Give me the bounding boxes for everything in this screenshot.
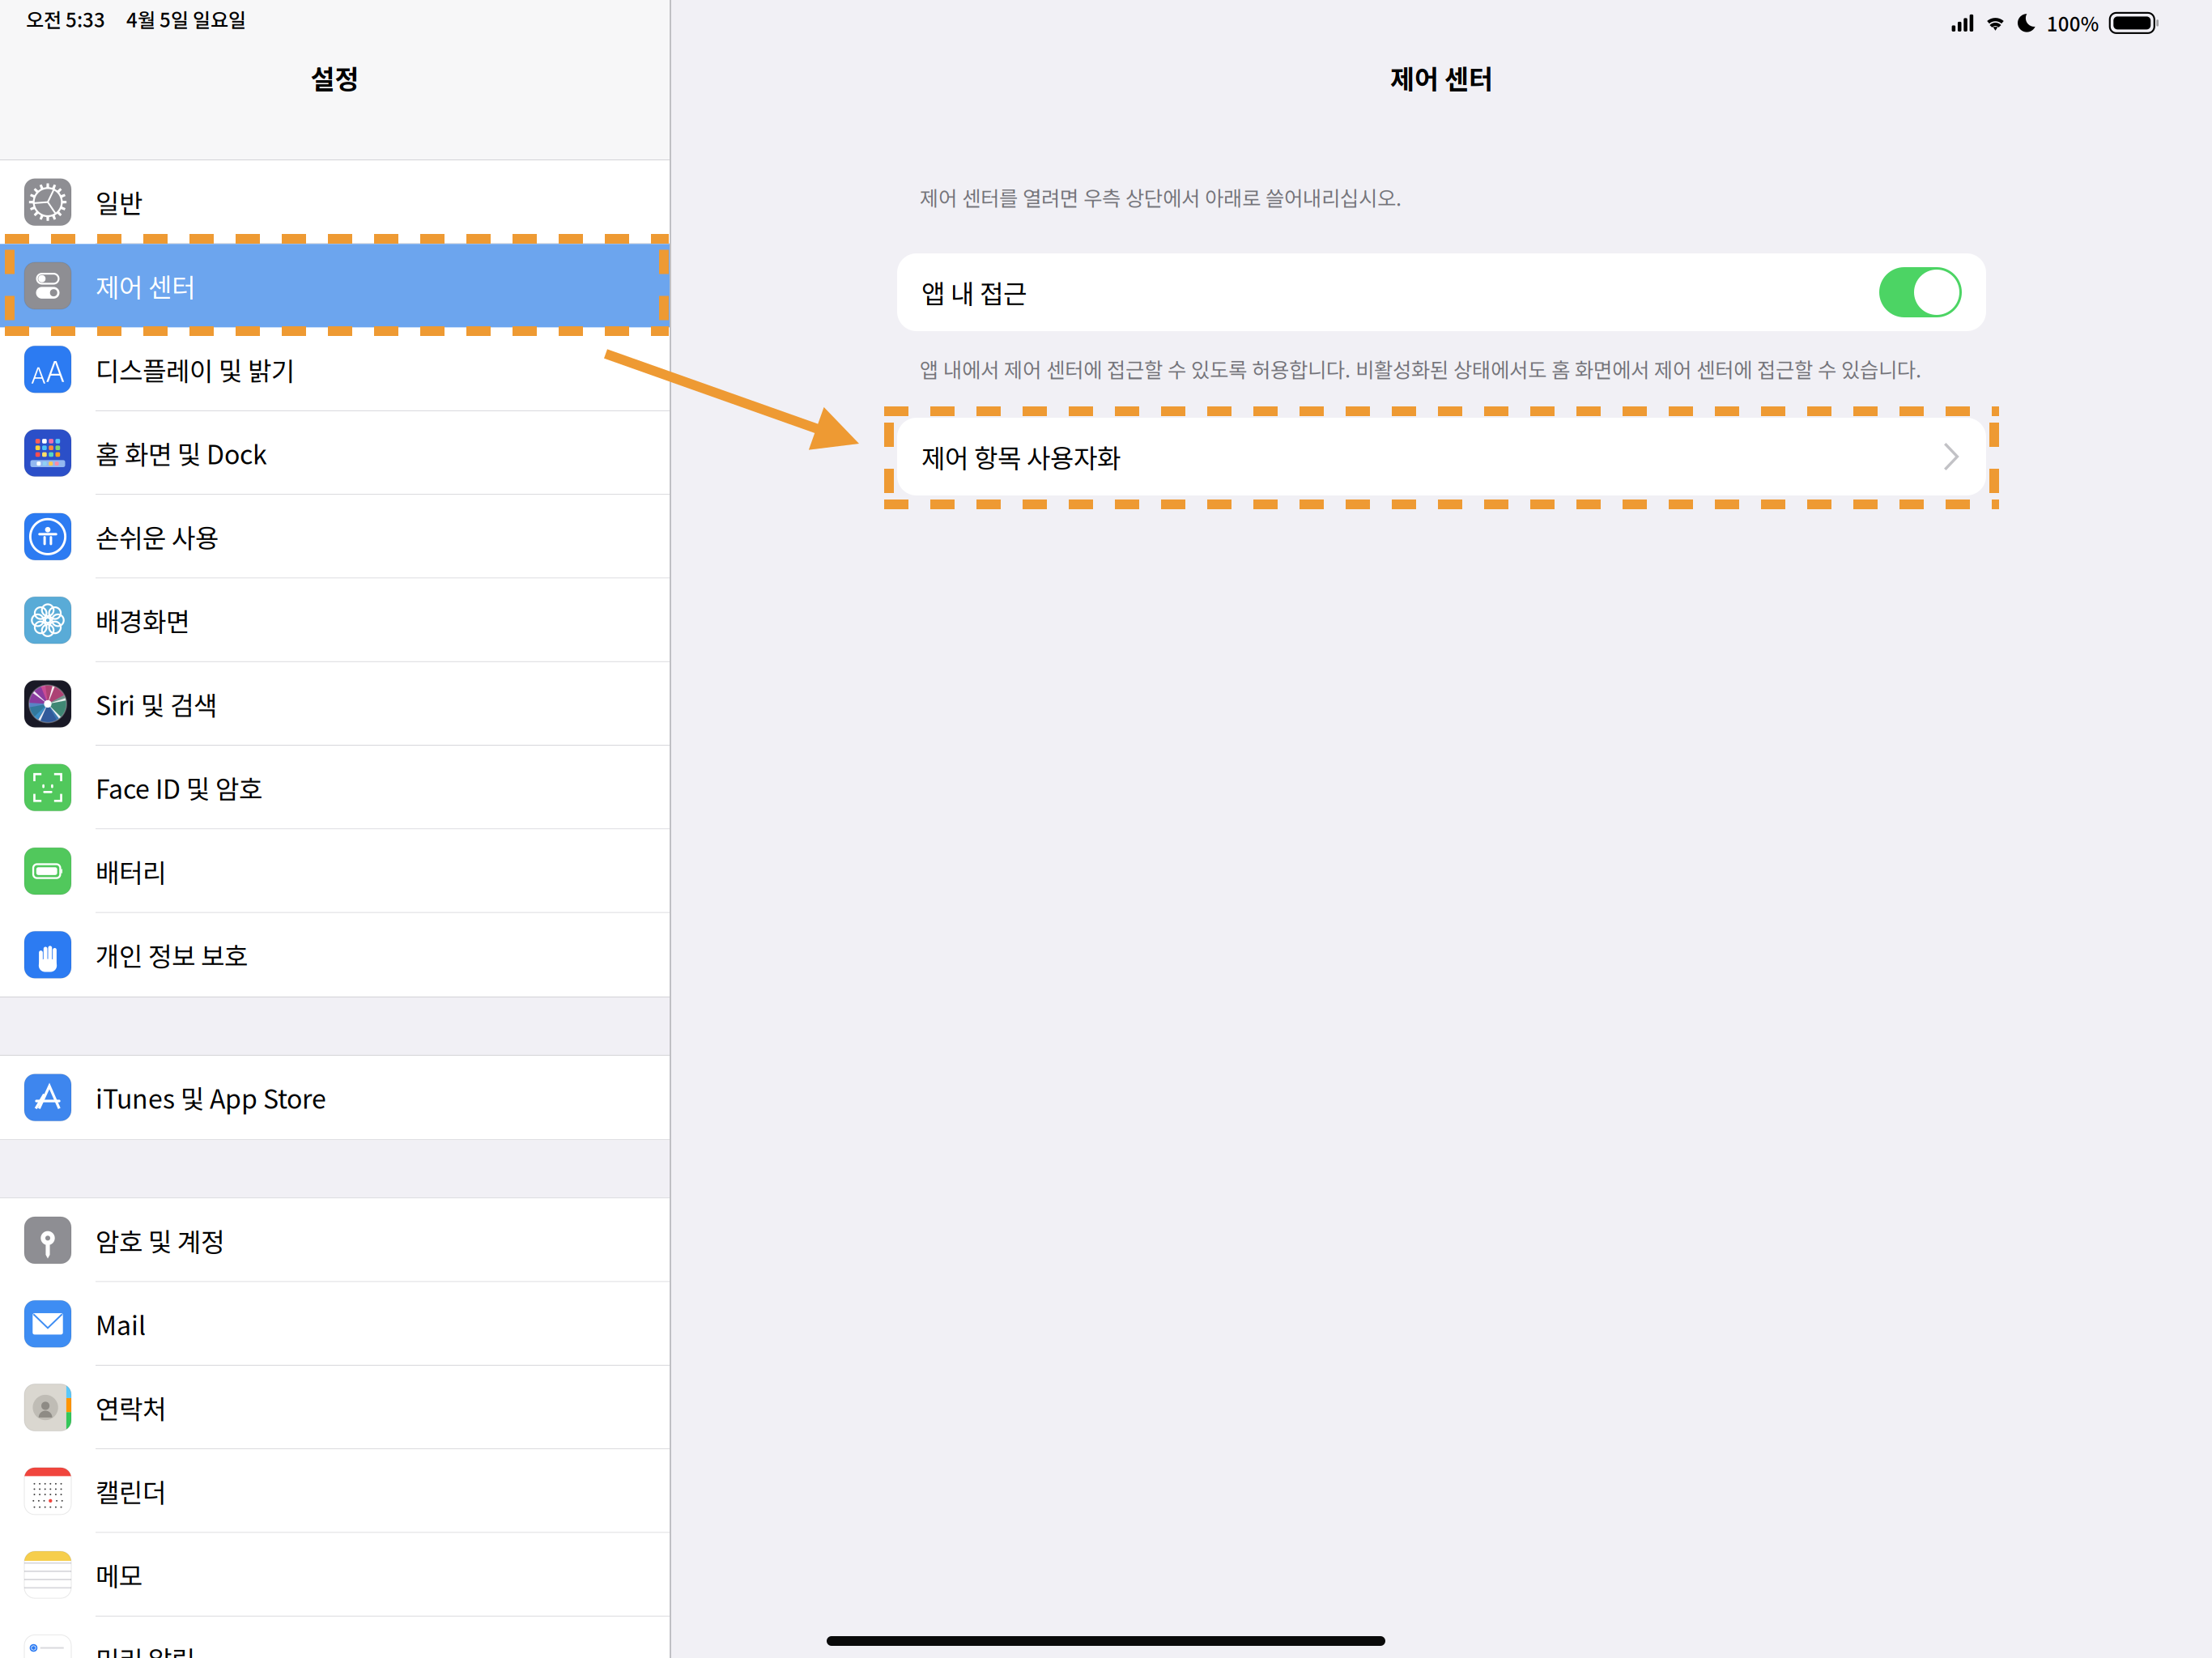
staticText: 홈 화면 및 Dock bbox=[96, 434, 267, 472]
staticText: 제어 센터 bbox=[96, 267, 195, 304]
staticText: 앱 내 접근 bbox=[921, 273, 1027, 311]
button[interactable]: 일반 bbox=[0, 160, 670, 244]
button[interactable]: 배경화면 bbox=[0, 578, 670, 662]
staticText: 메모 bbox=[96, 1556, 143, 1593]
button[interactable]: 배터리 bbox=[0, 829, 670, 913]
staticText: Mail bbox=[96, 1305, 146, 1343]
button[interactable]: Siri 및 검색 bbox=[0, 662, 670, 746]
button[interactable]: A bbox=[0, 328, 670, 411]
button[interactable]: 제어 항목 사용자화 bbox=[897, 418, 1986, 495]
button[interactable]: 캘린더 bbox=[0, 1449, 670, 1533]
button[interactable]: 제어 센터 bbox=[0, 244, 670, 328]
staticText: 배경화면 bbox=[96, 602, 189, 639]
staticText: 미리 알림 bbox=[96, 1640, 195, 1658]
button[interactable]: 메모 bbox=[0, 1533, 670, 1617]
staticText: Siri 및 검색 bbox=[96, 685, 217, 723]
button[interactable]: 연락처 bbox=[0, 1366, 670, 1449]
staticText: A bbox=[31, 362, 46, 389]
button[interactable]: 미리 알림 bbox=[0, 1617, 670, 1658]
button[interactable]: iTunes 및 App Store bbox=[0, 1056, 670, 1139]
staticText: iTunes 및 App Store bbox=[96, 1079, 326, 1116]
button[interactable]: 개인 정보 보호 bbox=[0, 913, 670, 997]
staticText: 제어 센터를 열려면 우측 상단에서 아래로 쓸어내리십시오. bbox=[920, 182, 1402, 212]
staticText: 캘린더 bbox=[96, 1472, 166, 1510]
staticText: 개인 정보 보호 bbox=[96, 936, 248, 974]
staticText: 일반 bbox=[96, 183, 143, 221]
staticText: 100% bbox=[2047, 9, 2099, 37]
button[interactable]: 홈 화면 및 Dock bbox=[0, 411, 670, 495]
staticText: 암호 및 계정 bbox=[96, 1221, 224, 1259]
staticText: Face ID 및 암호 bbox=[96, 769, 262, 806]
button[interactable]: 암호 및 계정 bbox=[0, 1198, 670, 1282]
staticText: 설정 bbox=[311, 58, 359, 97]
staticText: 앱 내에서 제어 센터에 접근할 수 있도록 허용합니다. 비활성화된 상태에서… bbox=[920, 354, 1921, 383]
staticText: 제어 센터 bbox=[1390, 58, 1493, 97]
button[interactable]: 손쉬운 사용 bbox=[0, 495, 670, 578]
staticText: 배터리 bbox=[96, 852, 166, 890]
staticText: 디스플레이 및 밝기 bbox=[96, 351, 295, 388]
staticText: 오전 5:33 bbox=[26, 5, 105, 33]
button[interactable]: 앱 내 접근 bbox=[1879, 267, 1962, 317]
staticText: 4월 5일 일요일 bbox=[126, 5, 246, 33]
button[interactable]: Mail bbox=[0, 1282, 670, 1366]
staticText: 제어 항목 사용자화 bbox=[921, 438, 1121, 475]
staticText: A bbox=[46, 354, 64, 389]
staticText: 연락처 bbox=[96, 1389, 166, 1426]
staticText: 손쉬운 사용 bbox=[96, 518, 219, 555]
button[interactable]: Face ID 및 암호 bbox=[0, 746, 670, 829]
